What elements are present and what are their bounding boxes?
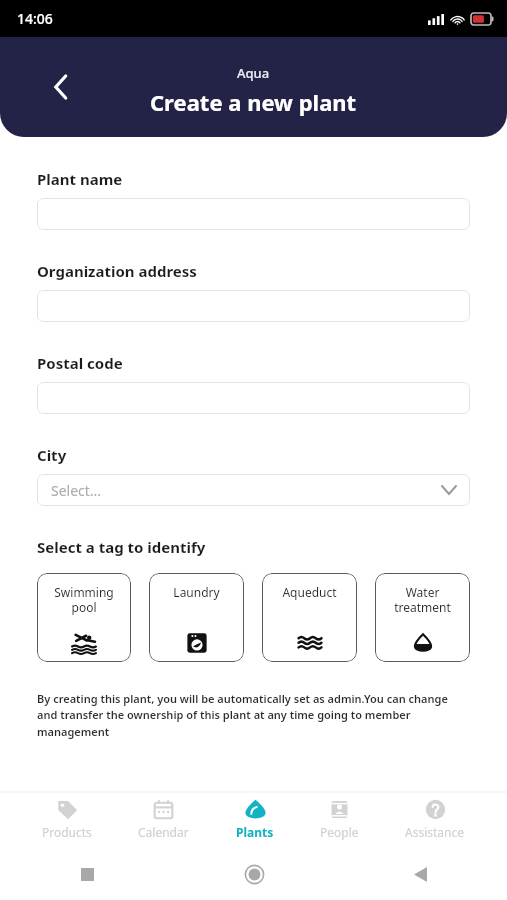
button[interactable]: Select... xyxy=(37,474,470,506)
button[interactable]: Aqueduct xyxy=(262,573,357,662)
button[interactable]: People xyxy=(316,795,363,844)
button[interactable]: Plants xyxy=(232,795,278,844)
staticText: Create a new plant xyxy=(150,87,357,117)
staticText: By creating this plant, you will be auto… xyxy=(37,691,470,740)
staticText: City xyxy=(37,445,67,465)
staticText: Aqueduct xyxy=(282,584,337,600)
button[interactable]: Laundry xyxy=(149,573,244,662)
button[interactable] xyxy=(37,382,470,414)
button[interactable]: Back xyxy=(44,70,78,104)
staticText: Calendar xyxy=(138,824,189,840)
button[interactable]: Water treatment xyxy=(375,573,470,662)
button[interactable]: Assistance xyxy=(401,795,469,844)
button[interactable]: Calendar xyxy=(134,795,193,844)
staticText: Products xyxy=(42,824,92,840)
staticText: Water treatment xyxy=(394,584,451,615)
staticText: Plants xyxy=(236,824,274,840)
button[interactable]: Products xyxy=(38,795,96,844)
staticText: Plant name xyxy=(37,169,123,189)
staticText: Select a tag to identify xyxy=(37,537,206,557)
button[interactable]: Recent apps xyxy=(70,857,104,891)
button[interactable]: Home xyxy=(237,857,271,891)
button[interactable]: Back xyxy=(403,857,437,891)
staticText: Postal code xyxy=(37,353,123,373)
staticText: Organization address xyxy=(37,261,197,281)
staticText: Select... xyxy=(51,481,102,500)
staticText: Assistance xyxy=(405,824,465,840)
button[interactable] xyxy=(37,290,470,322)
staticText: Aqua xyxy=(237,64,270,82)
button[interactable] xyxy=(37,198,470,230)
staticText: Swimming pool xyxy=(54,584,114,615)
staticText: People xyxy=(320,824,359,840)
button[interactable]: Swimming pool xyxy=(37,573,131,662)
staticText: 14:06 xyxy=(17,9,53,28)
staticText: Laundry xyxy=(173,584,220,600)
